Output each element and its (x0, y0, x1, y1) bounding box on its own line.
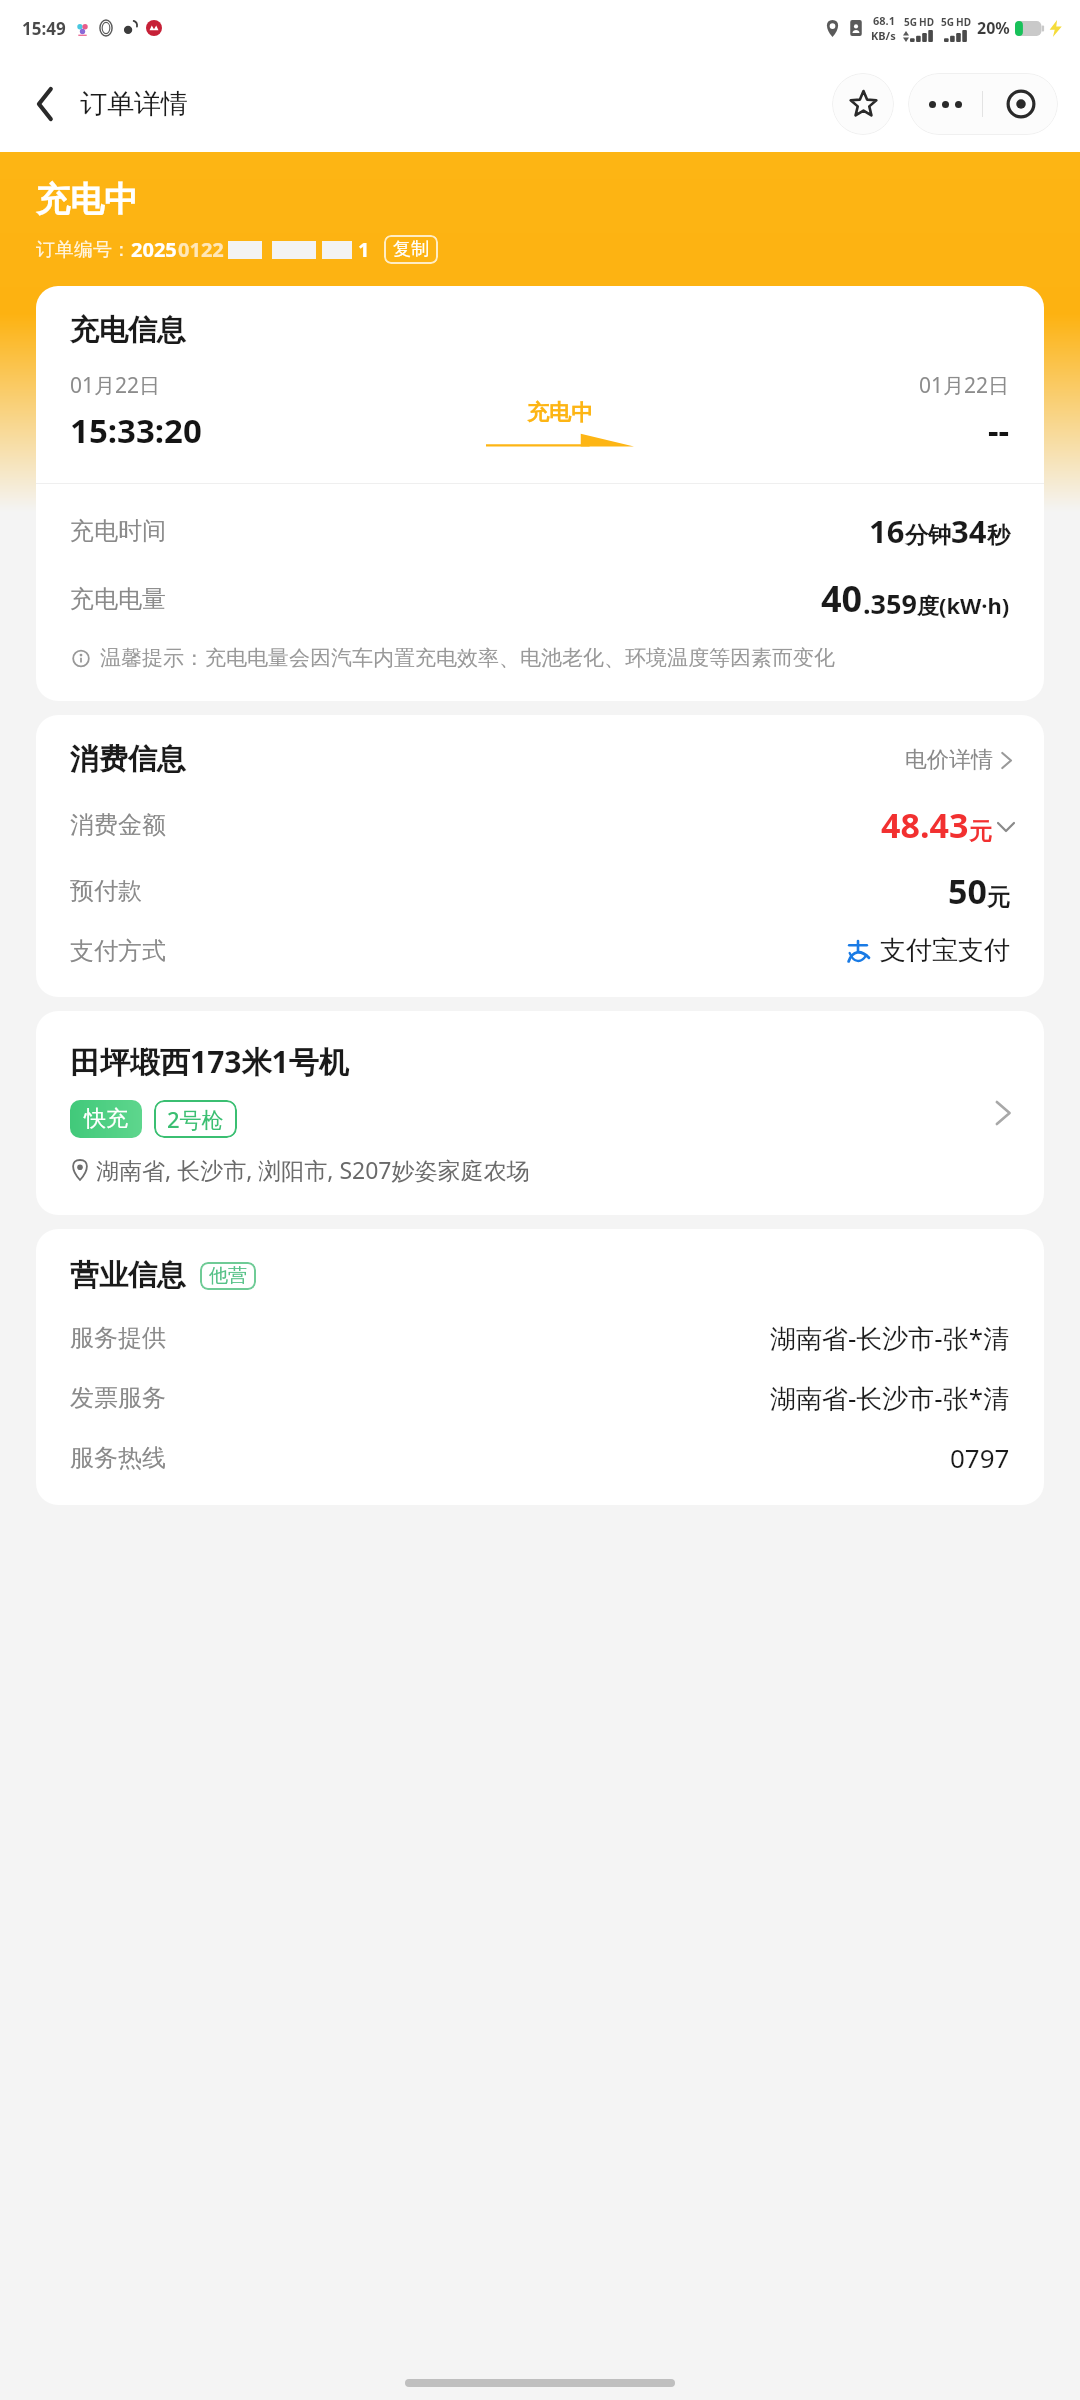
staticText: 田坪塅西173米1号机 (70, 1041, 349, 1082)
staticText: -- (988, 408, 1010, 453)
staticText: 发票服务 (70, 1383, 166, 1413)
staticText: 湖南省, 长沙市, 浏阳市, S207妙姿家庭农场 (96, 1154, 530, 1185)
staticText: KB/s (871, 28, 896, 43)
staticText: 充电中 (36, 178, 138, 221)
staticText: 01月22日 (70, 371, 161, 400)
staticText: 服务提供 (70, 1323, 166, 1353)
staticText: 50 (948, 868, 987, 914)
staticText: 2025 (131, 236, 177, 263)
staticText: 01月22日 (919, 371, 1010, 400)
staticText: 充电中 (527, 399, 593, 427)
button[interactable]: Back (18, 77, 72, 131)
staticText: 充电信息 (70, 312, 186, 349)
staticText: 支付方式 (70, 936, 166, 966)
staticText: 5G (904, 15, 917, 29)
staticText: 元 (969, 817, 992, 846)
staticText: 48.43 (881, 802, 969, 848)
staticText: 15:49 (22, 17, 66, 40)
staticText: 秒 (987, 521, 1010, 550)
staticText: 服务热线 (70, 1443, 166, 1473)
staticText: 他营 (209, 1264, 247, 1288)
staticText: 充电电量 (70, 584, 166, 614)
staticText: HD (956, 15, 971, 29)
staticText: 16 (869, 510, 905, 552)
button[interactable]: 电价详情 (905, 746, 1014, 774)
staticText: 支付宝支付 (880, 934, 1010, 967)
button[interactable]: 田坪塅西173米1号机 (36, 1011, 1044, 1215)
staticText: 68.1 (873, 13, 895, 28)
staticText: 40 (821, 574, 863, 623)
staticText: 20% (977, 17, 1010, 39)
staticText: 1 (358, 236, 370, 263)
staticText: 湖南省-长沙市-张*清 (770, 1320, 1010, 1356)
staticText: 分钟 (905, 521, 951, 550)
staticText: 消费信息 (70, 741, 186, 778)
button[interactable]: Favorite (832, 73, 894, 135)
button[interactable]: Target (983, 73, 1058, 135)
button[interactable]: 复制 (384, 235, 438, 264)
button[interactable]: 消费金额 (70, 802, 1014, 848)
staticText: 消费金额 (70, 810, 166, 840)
staticText: 34 (951, 510, 987, 552)
staticText: .359 (863, 585, 917, 622)
staticText: 电价详情 (905, 746, 993, 774)
staticText: 0797 (950, 1440, 1010, 1475)
staticText: 5G (941, 15, 954, 29)
staticText: 订单详情 (80, 87, 188, 121)
staticText: 0122 (178, 236, 224, 263)
staticText: 充电时间 (70, 516, 166, 546)
button[interactable]: More options (908, 73, 982, 135)
staticText: HD (919, 15, 934, 29)
staticText: 度(kW·h) (917, 590, 1010, 620)
staticText: 快充 (84, 1105, 128, 1133)
staticText: 复制 (393, 238, 429, 261)
staticText: 营业信息 (70, 1257, 186, 1294)
staticText: 湖南省-长沙市-张*清 (770, 1380, 1010, 1416)
staticText: 15:33:20 (70, 408, 202, 453)
staticText: 2号枪 (167, 1104, 224, 1134)
staticText: 订单编号： (36, 238, 131, 262)
staticText: 温馨提示：充电电量会因汽车内置充电效率、电池老化、环境温度等因素而变化 (100, 645, 835, 671)
staticText: 预付款 (70, 876, 142, 906)
staticText: 元 (987, 883, 1010, 912)
